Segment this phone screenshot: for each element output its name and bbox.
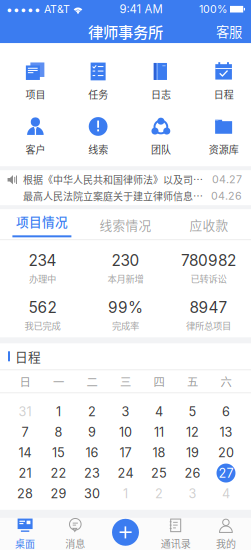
button[interactable]: 团队: [129, 114, 192, 158]
staticText: 28: [17, 486, 33, 501]
staticText: 234: [28, 251, 56, 270]
staticText: 二: [86, 373, 97, 389]
staticText: 14: [18, 445, 31, 460]
staticText: 2: [88, 404, 96, 419]
staticText: 已转诉讼: [190, 272, 226, 285]
staticText: 办理中: [29, 272, 56, 285]
staticText: 1: [123, 486, 128, 501]
staticText: 桌面: [15, 536, 35, 550]
staticText: 99%: [108, 298, 143, 317]
staticText: 五: [187, 373, 198, 389]
staticText: 任务: [88, 87, 108, 101]
button[interactable]: 我的: [201, 518, 251, 550]
staticText: 完成率: [112, 319, 139, 332]
staticText: 7: [21, 424, 28, 440]
staticText: 9: [88, 424, 96, 440]
button[interactable]: 线索情况: [84, 209, 167, 239]
button[interactable]: 消息: [50, 518, 100, 550]
staticText: 2: [155, 486, 163, 501]
staticText: 562: [28, 298, 56, 317]
button[interactable]: 应收款: [167, 209, 251, 239]
staticText: 4: [155, 404, 163, 419]
staticText: 25: [151, 465, 167, 481]
staticText: AT&T: [44, 3, 70, 16]
staticText: 6: [222, 404, 230, 419]
staticText: 20: [218, 445, 234, 460]
staticText: 六: [220, 373, 231, 389]
staticText: 04.26: [211, 189, 242, 202]
button[interactable]: 项目: [4, 59, 67, 103]
button[interactable]: 客服: [207, 19, 251, 43]
staticText: 11: [154, 424, 164, 440]
staticText: 一: [53, 373, 64, 389]
staticText: 13: [219, 424, 232, 440]
staticText: 16: [85, 445, 98, 460]
button[interactable]: 项目情况: [0, 209, 84, 239]
staticText: 27: [218, 465, 233, 481]
staticText: 23: [84, 465, 100, 481]
staticText: 日程: [15, 347, 41, 365]
staticText: 线索情况: [99, 215, 151, 234]
staticText: 17: [119, 445, 131, 460]
staticText: 本月新增: [107, 272, 143, 285]
staticText: 3: [188, 486, 196, 501]
staticText: 22: [50, 465, 66, 481]
button[interactable]: 客户: [4, 114, 67, 158]
staticText: 客户: [25, 142, 45, 156]
staticText: 三: [120, 373, 131, 389]
staticText: 项目情况: [16, 212, 68, 230]
staticText: 律所总项目: [186, 319, 231, 332]
staticText: 我已完成: [24, 319, 60, 332]
staticText: 12: [186, 424, 199, 440]
staticText: 31: [18, 404, 31, 419]
button[interactable]: 通讯录: [151, 518, 201, 550]
staticText: 资源库: [209, 142, 239, 156]
staticText: 15: [52, 445, 65, 460]
button[interactable]: New: [105, 517, 145, 547]
staticText: 通讯录: [161, 536, 191, 550]
staticText: 10: [119, 424, 132, 440]
staticText: 8947: [189, 298, 227, 317]
staticText: 1: [56, 404, 61, 419]
staticText: 律师事务所: [88, 20, 163, 42]
staticText: 团队: [151, 142, 171, 156]
staticText: 04.27: [212, 173, 242, 186]
staticText: 客服: [216, 22, 242, 41]
staticText: 18: [152, 445, 165, 460]
staticText: 日: [19, 373, 30, 389]
button[interactable]: 日程: [192, 59, 251, 103]
staticText: 26: [184, 465, 200, 481]
staticText: 29: [50, 486, 66, 501]
staticText: 9:41 AM: [119, 2, 162, 16]
staticText: 5: [188, 404, 196, 419]
staticText: 100%: [199, 3, 227, 16]
staticText: •••••: [6, 2, 41, 16]
staticText: 日程: [214, 87, 234, 101]
button[interactable]: 桌面: [0, 518, 50, 550]
button[interactable]: 日志: [129, 59, 192, 103]
staticText: 项目: [25, 87, 45, 101]
staticText: 780982: [181, 251, 236, 270]
staticText: 21: [18, 465, 31, 481]
staticText: 线索: [88, 142, 108, 156]
button[interactable]: 资源库: [192, 114, 251, 158]
staticText: 日志: [151, 87, 171, 101]
staticText: 我的: [216, 536, 236, 550]
staticText: 24: [117, 465, 133, 481]
staticText: 4: [222, 486, 230, 501]
button[interactable]: 任务: [67, 59, 130, 103]
button[interactable]: 线索: [67, 114, 130, 158]
staticText: 230: [111, 251, 139, 270]
staticText: 19: [186, 445, 199, 460]
staticText: 3: [121, 404, 129, 419]
staticText: 8: [54, 424, 62, 440]
staticText: 消息: [65, 536, 85, 550]
staticText: 根据《中华人民共和国律师法》以及司法...: [23, 172, 204, 187]
staticText: 最高人民法院立案庭关于建立律师信息库...: [23, 189, 203, 203]
staticText: 应收款: [190, 215, 229, 234]
staticText: 30: [84, 486, 100, 501]
staticText: 四: [153, 373, 164, 389]
